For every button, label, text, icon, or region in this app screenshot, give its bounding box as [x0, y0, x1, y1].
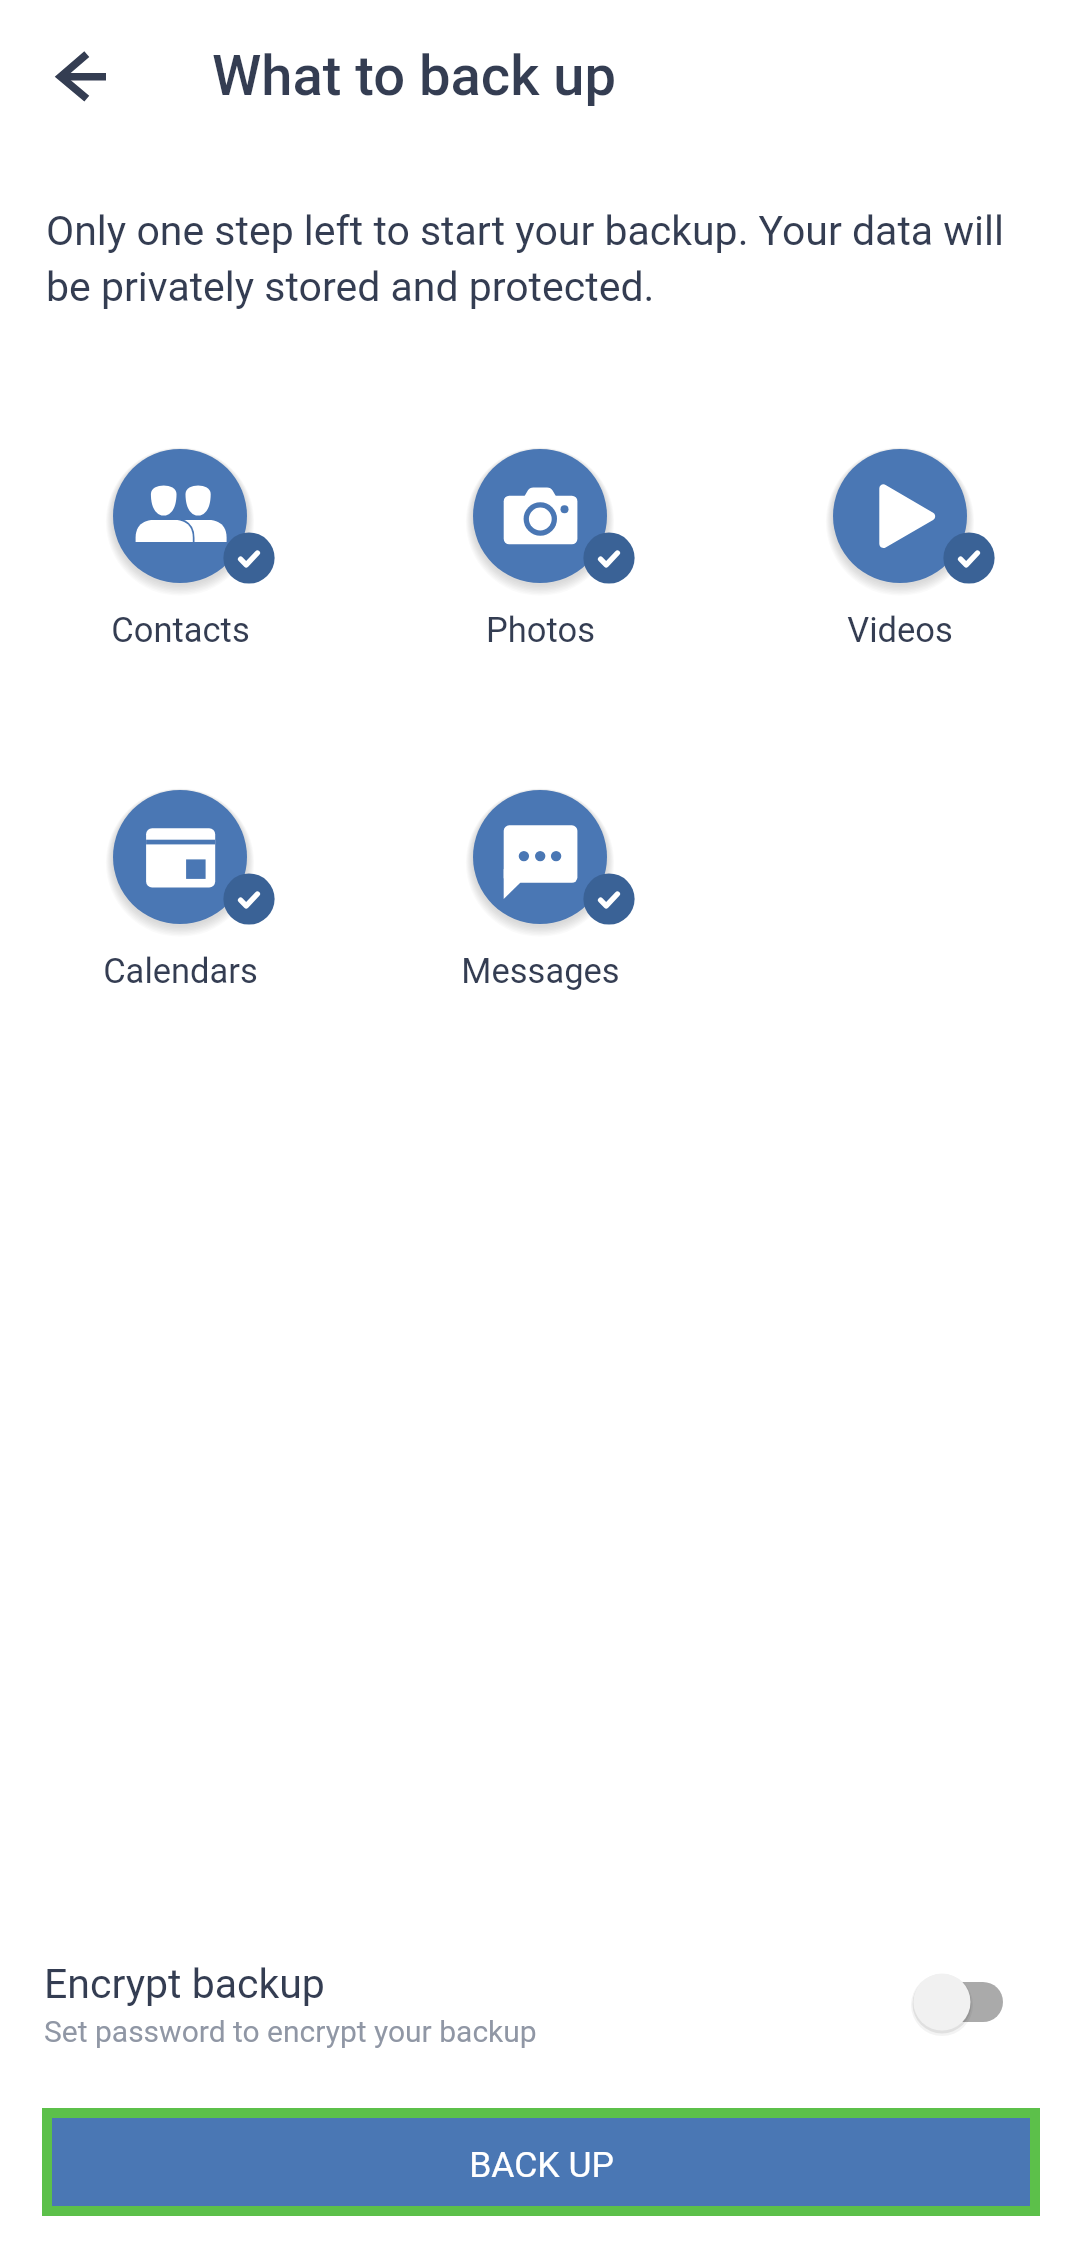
staticText: Messages — [461, 951, 620, 991]
button[interactable]: Calendars — [0, 790, 360, 991]
staticText: Photos — [486, 610, 595, 650]
staticText: Calendars — [103, 951, 258, 991]
staticText: Contacts — [111, 610, 250, 650]
button[interactable]: Encrypt backup — [916, 1965, 1036, 2045]
button[interactable]: Contacts — [0, 449, 360, 650]
button[interactable]: Photos — [360, 449, 720, 650]
staticText: Encrypt backup — [44, 1960, 325, 2008]
staticText: Videos — [847, 610, 953, 650]
staticText: Only one step left to start your backup.… — [46, 207, 1036, 311]
button[interactable]: BACK UP — [52, 2118, 1030, 2206]
button[interactable]: Encrypt backup — [0, 1932, 1080, 2077]
button[interactable]: Back — [32, 26, 132, 126]
staticText: Set password to encrypt your backup — [44, 2014, 537, 2049]
button[interactable]: Videos — [720, 449, 1080, 650]
staticText: BACK UP — [469, 2144, 614, 2186]
staticText: What to back up — [212, 43, 616, 109]
button[interactable]: Messages — [360, 790, 720, 991]
